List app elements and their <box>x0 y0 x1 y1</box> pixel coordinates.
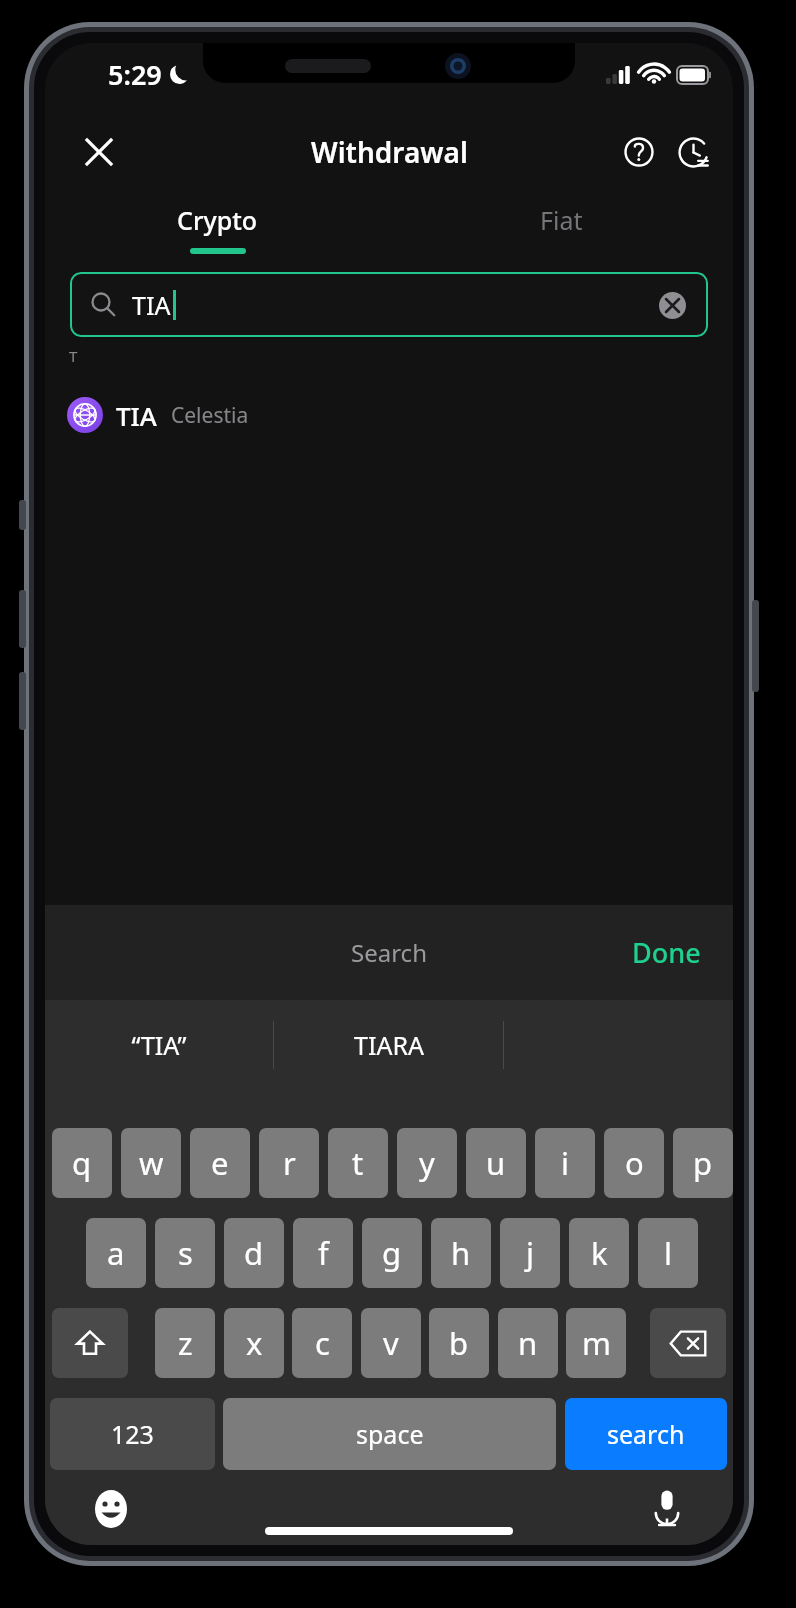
staticText: T <box>69 346 78 366</box>
button[interactable]: c <box>292 1308 352 1378</box>
button[interactable]: Search <box>351 936 427 969</box>
button[interactable]: 123 <box>50 1398 215 1470</box>
button[interactable]: Help <box>613 126 665 178</box>
staticText: k <box>591 1232 608 1274</box>
button[interactable]: j <box>500 1218 560 1288</box>
staticText: 123 <box>111 1417 154 1451</box>
staticText: n <box>518 1322 538 1364</box>
staticText: Celestia <box>171 401 249 430</box>
staticText: p <box>693 1142 713 1184</box>
button[interactable]: t <box>328 1128 388 1198</box>
staticText: g <box>382 1232 402 1274</box>
button[interactable]: Fiat <box>389 195 733 255</box>
button[interactable]: TIARA <box>274 1000 503 1090</box>
staticText: d <box>244 1232 264 1274</box>
button[interactable]: w <box>121 1128 181 1198</box>
button[interactable]: Emoji <box>85 1483 137 1535</box>
button[interactable]: Clear search <box>650 283 694 327</box>
staticText: search <box>607 1417 685 1451</box>
staticText: TIA <box>116 398 157 433</box>
button[interactable]: Shift <box>52 1308 128 1378</box>
button[interactable]: s <box>155 1218 215 1288</box>
staticText: m <box>582 1322 611 1364</box>
staticText: Withdrawal <box>311 133 468 171</box>
staticText: a <box>107 1232 125 1274</box>
button[interactable]: Backspace <box>650 1308 726 1378</box>
staticText: e <box>211 1142 229 1184</box>
button[interactable]: x <box>224 1308 284 1378</box>
staticText: b <box>449 1322 469 1364</box>
staticText: l <box>664 1232 672 1274</box>
staticText: Fiat <box>540 203 583 237</box>
button[interactable]: u <box>466 1128 526 1198</box>
button[interactable]: k <box>569 1218 629 1288</box>
button[interactable]: a <box>86 1218 146 1288</box>
staticText: v <box>383 1322 399 1364</box>
staticText: q <box>72 1142 92 1184</box>
button[interactable]: Voice input <box>641 1483 693 1535</box>
button[interactable]: Close <box>71 124 127 180</box>
button[interactable]: Crypto <box>45 195 389 255</box>
button[interactable]: l <box>638 1218 698 1288</box>
staticText: t <box>352 1142 364 1184</box>
staticText: y <box>419 1142 435 1184</box>
staticText: h <box>451 1232 471 1274</box>
staticText: TIA <box>132 288 171 322</box>
button[interactable]: space <box>223 1398 556 1470</box>
staticText: u <box>486 1142 506 1184</box>
button[interactable]: Done <box>622 926 711 979</box>
button[interactable]: o <box>604 1128 664 1198</box>
staticText: Crypto <box>177 203 258 237</box>
staticText: j <box>526 1232 534 1274</box>
staticText: space <box>356 1417 424 1451</box>
button[interactable]: v <box>361 1308 421 1378</box>
button[interactable]: n <box>498 1308 558 1378</box>
button[interactable]: i <box>535 1128 595 1198</box>
button[interactable]: d <box>224 1218 284 1288</box>
staticText: o <box>625 1142 644 1184</box>
staticText: f <box>318 1232 329 1274</box>
button[interactable]: f <box>293 1218 353 1288</box>
button[interactable]: Transaction history <box>667 126 719 178</box>
staticText: c <box>315 1322 330 1364</box>
button[interactable]: search <box>565 1398 727 1470</box>
button[interactable]: z <box>155 1308 215 1378</box>
staticText: Done <box>632 934 701 971</box>
button[interactable]: b <box>429 1308 489 1378</box>
button[interactable]: q <box>52 1128 112 1198</box>
staticText: s <box>178 1232 193 1274</box>
staticText: r <box>283 1142 296 1184</box>
staticText: 5:29 <box>108 56 162 93</box>
staticText: x <box>246 1322 263 1364</box>
staticText: w <box>139 1142 164 1184</box>
staticText: “TIA” <box>131 1028 187 1062</box>
staticText: z <box>178 1322 193 1364</box>
button[interactable]: y <box>397 1128 457 1198</box>
button[interactable]: TIA <box>70 272 708 337</box>
button[interactable]: “TIA” <box>45 1000 273 1090</box>
staticText: TIARA <box>354 1028 424 1062</box>
button[interactable]: TIA <box>45 381 733 449</box>
button[interactable]: m <box>566 1308 626 1378</box>
button[interactable]: h <box>431 1218 491 1288</box>
button[interactable]: e <box>190 1128 250 1198</box>
button[interactable]: r <box>259 1128 319 1198</box>
button[interactable]: g <box>362 1218 422 1288</box>
staticText: i <box>561 1142 569 1184</box>
button[interactable]: p <box>673 1128 733 1198</box>
